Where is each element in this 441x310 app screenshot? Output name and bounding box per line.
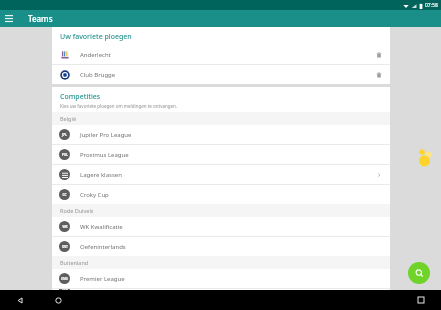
staticText: Club Brugge [80,71,116,79]
button[interactable]: Remove Anderlecht [371,47,387,63]
staticText: Proximus League [80,151,129,159]
staticText: Rode Duivels [60,207,94,214]
staticText: Uw favoriete ploegen [60,32,132,42]
staticText: PXL [62,153,68,157]
staticText: ENG [61,277,68,281]
button[interactable]: Search [408,262,430,284]
staticText: WK [62,225,68,229]
button[interactable]: Back [12,292,28,308]
staticText: België [60,115,76,122]
button[interactable]: PXL [52,145,390,164]
staticText: INT [62,245,68,249]
button[interactable]: Lagere klassen [52,165,390,184]
button[interactable]: Home [50,292,66,308]
staticText: Anderlecht [80,51,111,59]
staticText: Oefeninterlands [80,243,126,251]
staticText: JPL [62,133,67,137]
button[interactable]: Anderlecht [52,45,390,64]
staticText: ESP [62,289,68,290]
button[interactable]: ESP [52,289,390,290]
staticText: Buitenland [60,259,89,266]
staticText: Premier League [80,275,125,283]
staticText: 07:58 [425,2,438,9]
button[interactable]: Club Brugge [52,65,390,84]
staticText: Croky Cup [80,191,109,199]
button[interactable]: INT [52,237,390,256]
button[interactable]: WK [52,217,390,236]
staticText: Kies uw favoriete ploegen om meldingen t… [60,103,178,109]
staticText: Teams [28,13,53,24]
staticText: Lagere klassen [80,171,122,179]
button[interactable]: JPL [52,125,390,144]
staticText: Jupiler Pro League [80,131,132,139]
button[interactable]: ENG [52,269,390,288]
staticText: Competities [60,92,101,102]
staticText: CC [62,193,67,197]
button[interactable]: Recent apps [413,292,429,308]
staticText: WK Kwalificatie [80,223,123,231]
button[interactable]: Open navigation menu [0,10,17,27]
button[interactable]: Remove Club Brugge [371,67,387,83]
button[interactable]: CC [52,185,390,204]
